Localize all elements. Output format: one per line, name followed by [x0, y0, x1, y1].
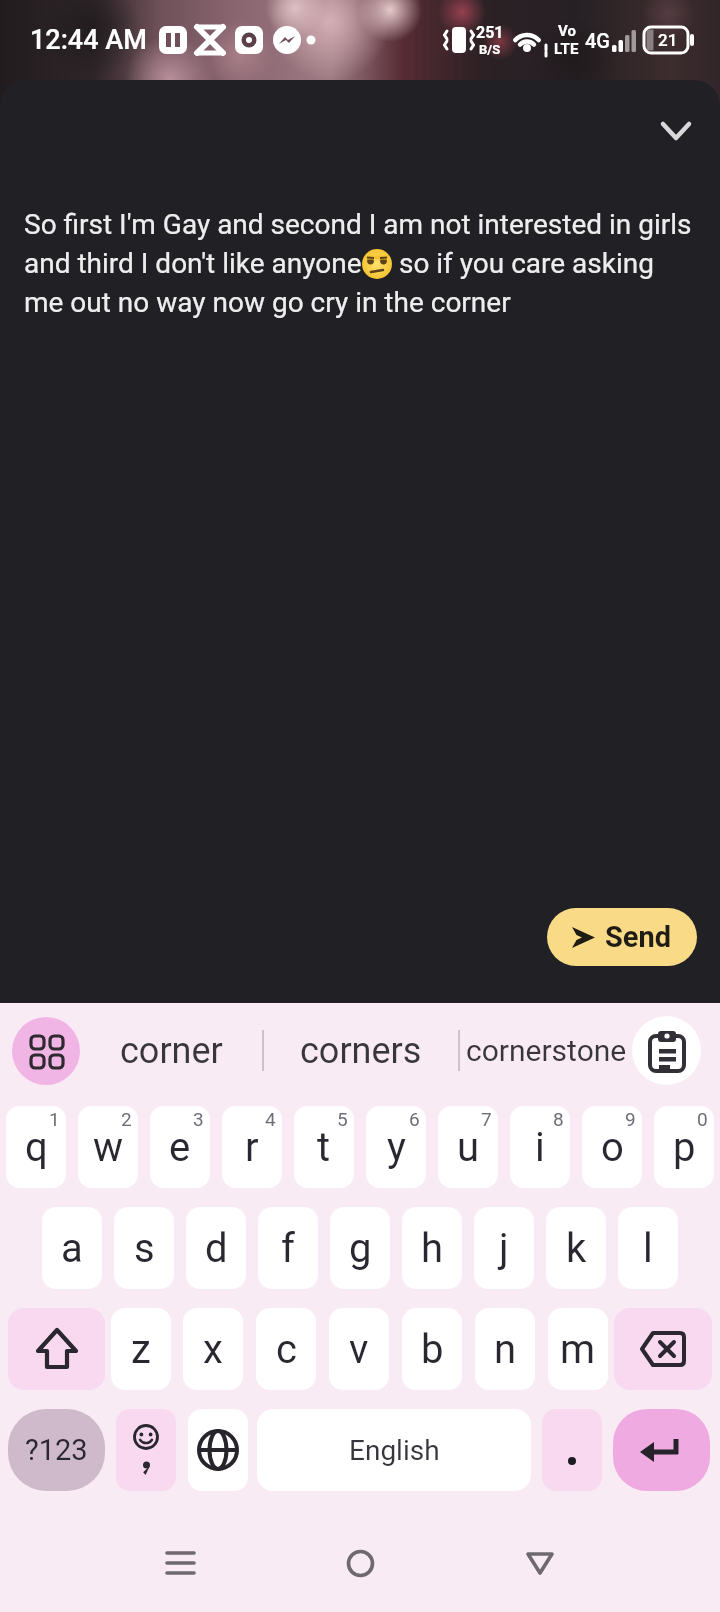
staticText: LTE — [554, 40, 579, 58]
staticText: z — [131, 1326, 151, 1373]
staticText: 1 — [49, 1108, 60, 1130]
staticText: a — [61, 1225, 83, 1272]
staticText: b — [421, 1326, 444, 1373]
staticText: w — [93, 1124, 124, 1171]
button[interactable] — [632, 1016, 701, 1085]
staticText: e — [169, 1124, 191, 1171]
button[interactable]: corner — [80, 1003, 262, 1098]
staticText: k — [566, 1225, 587, 1272]
staticText: t — [317, 1124, 331, 1171]
button[interactable]: n — [475, 1308, 535, 1390]
staticText: s — [134, 1225, 155, 1272]
staticText: 6 — [409, 1108, 420, 1130]
staticText: g — [349, 1225, 372, 1272]
staticText: English — [349, 1434, 440, 1467]
button[interactable]: s — [114, 1207, 174, 1289]
button[interactable] — [300, 1543, 420, 1583]
button[interactable] — [613, 1409, 710, 1491]
staticText: 4G — [585, 29, 610, 52]
button[interactable]: x — [183, 1308, 243, 1390]
button[interactable]: p — [654, 1106, 714, 1188]
button[interactable]: Send — [547, 908, 697, 966]
staticText: n — [494, 1326, 517, 1373]
button[interactable]: w — [78, 1106, 138, 1188]
staticText: r — [245, 1124, 259, 1171]
staticText: Vo — [558, 22, 576, 40]
staticText: x — [203, 1326, 223, 1373]
button[interactable]: u — [438, 1106, 498, 1188]
staticText: 12:44 AM — [30, 24, 147, 56]
staticText: B/S — [479, 42, 501, 57]
staticText: so if you care asking — [392, 247, 654, 280]
staticText: Send — [605, 920, 672, 954]
staticText: 251 — [476, 23, 504, 42]
button[interactable]: f — [258, 1207, 318, 1289]
button[interactable]: v — [329, 1308, 389, 1390]
staticText: cornerstone — [466, 1033, 627, 1068]
staticText: v — [349, 1326, 369, 1373]
button[interactable]: c — [256, 1308, 316, 1390]
button[interactable] — [120, 1543, 240, 1583]
button[interactable]: t — [294, 1106, 354, 1188]
button[interactable]: l — [618, 1207, 678, 1289]
staticText: 3 — [193, 1108, 204, 1130]
staticText: corner — [120, 1030, 223, 1072]
staticText: 21 — [658, 30, 678, 50]
button[interactable]: o — [582, 1106, 642, 1188]
staticText: u — [457, 1124, 480, 1171]
staticText: corners — [300, 1030, 422, 1072]
button[interactable]: a — [42, 1207, 102, 1289]
staticText: and third I don't like anyone — [24, 247, 362, 280]
staticText: 0 — [697, 1108, 708, 1130]
staticText: So first I'm Gay and second I am not int… — [24, 208, 692, 241]
button[interactable] — [656, 116, 696, 146]
button[interactable] — [480, 1543, 600, 1583]
staticText: c — [276, 1326, 297, 1373]
button[interactable]: g — [330, 1207, 390, 1289]
button[interactable] — [614, 1308, 712, 1390]
staticText: h — [421, 1225, 444, 1272]
button[interactable]: z — [111, 1308, 171, 1390]
staticText: ?123 — [25, 1433, 88, 1467]
button[interactable]: corners — [264, 1003, 458, 1098]
staticText: l — [643, 1225, 653, 1272]
button[interactable]: k — [546, 1207, 606, 1289]
staticText: f — [281, 1225, 295, 1272]
button[interactable]: b — [402, 1308, 462, 1390]
button[interactable] — [12, 1017, 80, 1085]
staticText: i — [535, 1124, 545, 1171]
button[interactable]: English — [257, 1409, 531, 1491]
button[interactable]: d — [186, 1207, 246, 1289]
button[interactable]: i — [510, 1106, 570, 1188]
button[interactable] — [542, 1409, 602, 1491]
staticText: 5 — [337, 1108, 348, 1130]
button[interactable]: q — [6, 1106, 66, 1188]
staticText: m — [560, 1326, 596, 1373]
button[interactable]: cornerstone — [460, 1003, 632, 1098]
staticText: 4 — [265, 1108, 276, 1130]
button[interactable]: y — [366, 1106, 426, 1188]
button[interactable]: j — [474, 1207, 534, 1289]
staticText: o — [601, 1124, 624, 1171]
button[interactable] — [116, 1409, 176, 1491]
button[interactable] — [8, 1308, 105, 1390]
staticText: 9 — [625, 1108, 636, 1130]
staticText: p — [673, 1124, 696, 1171]
staticText: 2 — [121, 1108, 132, 1130]
staticText: q — [25, 1124, 48, 1171]
button[interactable] — [188, 1409, 248, 1491]
button[interactable]: ?123 — [8, 1409, 105, 1491]
staticText: me out no way now go cry in the corner — [24, 286, 511, 319]
staticText: 7 — [481, 1108, 492, 1130]
staticText: 8 — [553, 1108, 564, 1130]
button[interactable]: h — [402, 1207, 462, 1289]
staticText: y — [387, 1124, 406, 1171]
button[interactable]: r — [222, 1106, 282, 1188]
button[interactable]: m — [548, 1308, 608, 1390]
staticText: d — [205, 1225, 228, 1272]
button[interactable]: e — [150, 1106, 210, 1188]
staticText: j — [499, 1225, 509, 1272]
